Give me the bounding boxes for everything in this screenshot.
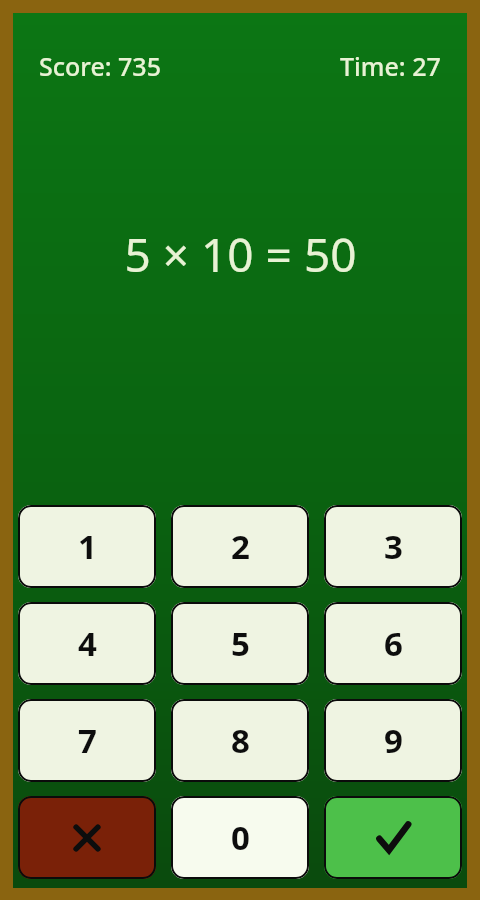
staticText: 0 — [231, 815, 250, 860]
button[interactable]: 2 — [171, 505, 309, 588]
staticText: 5 — [231, 621, 250, 666]
staticText: 6 — [384, 621, 403, 666]
button[interactable]: 5 — [171, 602, 309, 685]
staticText: 8 — [231, 718, 250, 763]
button[interactable]: Clear — [18, 796, 156, 879]
staticText: 3 — [384, 524, 403, 569]
staticText: 4 — [78, 621, 97, 666]
button[interactable]: 0 — [171, 796, 309, 879]
button[interactable]: 3 — [324, 505, 462, 588]
staticText: 2 — [231, 524, 250, 569]
button[interactable]: 8 — [171, 699, 309, 782]
button[interactable]: 7 — [18, 699, 156, 782]
staticText: 1 — [78, 524, 97, 569]
staticText: Score: 735 — [39, 49, 161, 83]
button[interactable]: 6 — [324, 602, 462, 685]
staticText: 9 — [384, 718, 403, 763]
staticText: 5 × 10 = 50 — [124, 223, 357, 286]
staticText: 7 — [78, 718, 97, 763]
button[interactable]: 9 — [324, 699, 462, 782]
staticText: Time: 27 — [340, 49, 441, 83]
button[interactable]: Submit answer — [324, 796, 462, 879]
button[interactable]: 1 — [18, 505, 156, 588]
button[interactable]: 4 — [18, 602, 156, 685]
